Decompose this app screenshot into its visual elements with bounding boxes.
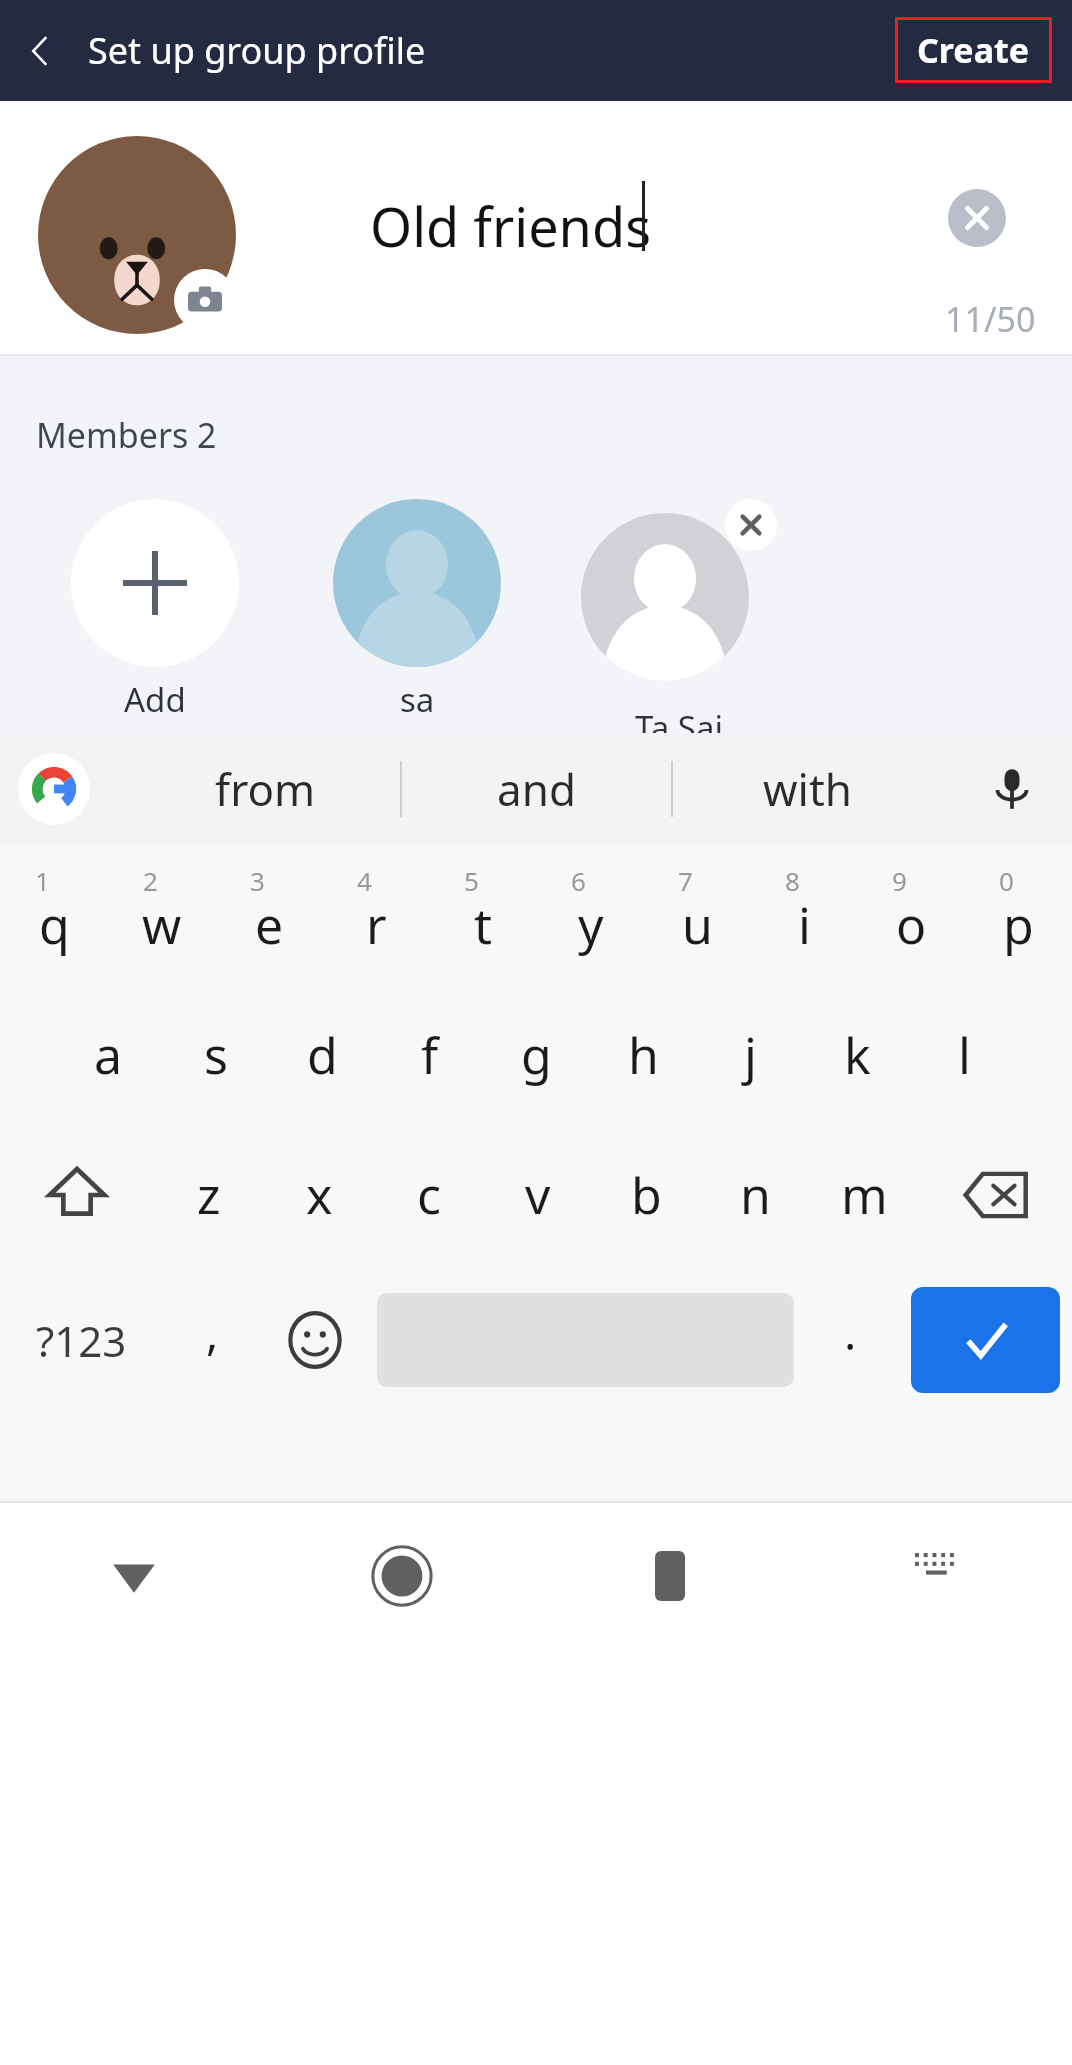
button[interactable]: c [374,1125,483,1265]
button[interactable]: . [802,1265,899,1415]
button[interactable]: Clear text [948,189,1006,247]
staticText: Old friends [370,189,652,263]
button[interactable]: n [701,1125,810,1265]
staticText: 4 [357,863,372,898]
button[interactable]: Back [10,21,70,81]
button[interactable]: x [264,1125,374,1265]
button[interactable]: Change group photo [38,136,236,334]
button[interactable]: a [54,985,162,1125]
button[interactable]: Remove Ta Sai [548,499,810,733]
staticText: h [628,1021,659,1089]
staticText: r [366,891,387,959]
staticText: . [844,1301,857,1364]
button[interactable]: Recent apps [536,1501,804,1651]
button[interactable]: k [804,985,911,1125]
staticText: i [798,891,811,959]
staticText: f [421,1021,439,1089]
button[interactable]: with [673,733,942,845]
staticText: m [841,1161,888,1229]
staticText: d [307,1021,338,1089]
staticText: b [631,1161,662,1229]
staticText: a [94,1021,123,1089]
staticText: Set up group profile [88,26,426,75]
button[interactable]: , [163,1265,261,1415]
button[interactable]: 4 [323,845,430,985]
staticText: n [740,1161,771,1229]
button[interactable]: Create [895,17,1052,83]
staticText: Create [917,27,1030,73]
button[interactable]: Shift [0,1125,154,1265]
staticText: 6 [571,863,586,898]
staticText: 3 [250,863,265,898]
button[interactable]: 8 [751,845,858,985]
button[interactable]: and [402,733,671,845]
button[interactable]: Switch keyboard [804,1501,1072,1651]
staticText: Members 2 [36,412,217,458]
button[interactable]: 9 [858,845,965,985]
staticText: j [744,1021,757,1089]
button[interactable]: 2 [108,845,216,985]
staticText: 9 [892,863,907,898]
staticText: 5 [464,863,479,898]
staticText: e [255,891,284,959]
staticText: sa [400,677,435,722]
staticText: x [306,1161,333,1229]
button[interactable]: j [697,985,804,1125]
staticText: c [417,1161,441,1229]
staticText: ?123 [36,1312,127,1369]
button[interactable]: Remove Ta Sai [725,499,777,551]
staticText: p [1003,891,1034,959]
staticText: y [578,891,604,959]
staticText: z [197,1161,221,1229]
button[interactable]: Voice input [976,753,1048,825]
staticText: g [521,1021,552,1089]
staticText: 7 [678,863,693,898]
button[interactable]: Hide keyboard [0,1501,268,1651]
button[interactable]: from [130,733,400,845]
button[interactable]: Emoji [261,1265,369,1415]
staticText: 11/50 [945,296,1036,342]
staticText: 8 [785,863,800,898]
button[interactable]: Take photo [174,269,236,331]
button[interactable]: ?123 [0,1265,163,1415]
button[interactable]: 0 [965,845,1072,985]
button[interactable]: 3 [216,845,323,985]
staticText: q [39,891,70,959]
staticText: 0 [999,863,1014,898]
button[interactable]: 1 [0,845,108,985]
staticText: w [142,891,182,959]
button[interactable]: g [483,985,590,1125]
button[interactable]: b [592,1125,701,1265]
button[interactable]: Home [268,1501,536,1651]
button[interactable]: s [162,985,269,1125]
button[interactable]: m [810,1125,919,1265]
staticText: k [844,1021,871,1089]
button[interactable]: sa [286,499,548,722]
staticText: l [958,1021,971,1089]
button[interactable]: 7 [644,845,751,985]
button[interactable]: h [590,985,697,1125]
button[interactable]: Add [24,499,286,722]
staticText: 1 [35,863,50,898]
button[interactable]: 5 [430,845,537,985]
button[interactable]: l [911,985,1018,1125]
button[interactable]: v [483,1125,592,1265]
staticText: , [206,1301,219,1364]
staticText: with [763,759,853,819]
staticText: t [474,891,493,959]
button[interactable]: z [154,1125,264,1265]
button[interactable]: d [269,985,376,1125]
staticText: v [525,1161,551,1229]
staticText: Ta Sai [635,705,723,733]
staticText: 2 [143,863,158,898]
button[interactable]: Backspace [919,1125,1072,1265]
button[interactable]: Google [18,753,90,825]
staticText: and [497,759,576,819]
staticText: from [215,759,316,819]
button[interactable]: f [376,985,483,1125]
button[interactable]: Enter [911,1287,1060,1393]
button[interactable]: 6 [537,845,644,985]
staticText: o [896,891,927,959]
staticText: u [682,891,713,959]
